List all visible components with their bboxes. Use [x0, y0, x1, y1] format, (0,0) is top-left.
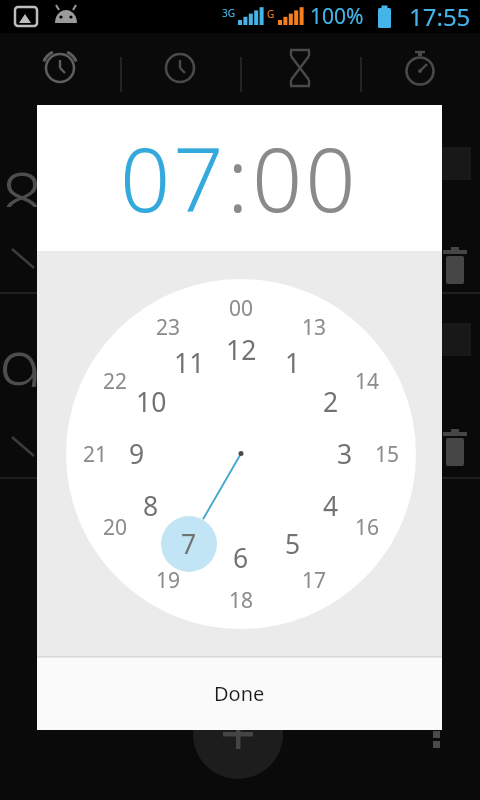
staticText: 3: [337, 436, 353, 472]
staticText: 12: [226, 332, 257, 368]
button[interactable]: Done: [37, 656, 442, 730]
staticText: 3G: [222, 6, 235, 20]
button[interactable]: [360, 33, 480, 103]
staticText: 8: [1, 147, 44, 207]
staticText: 23: [156, 313, 181, 342]
staticText: 13: [302, 313, 327, 342]
staticText: 00: [252, 118, 359, 238]
staticText: 14: [355, 367, 380, 396]
staticText: 16: [355, 513, 380, 542]
staticText: 8: [143, 488, 159, 524]
button[interactable]: [193, 689, 283, 779]
staticText: 17: [302, 566, 327, 595]
staticText: 5: [285, 526, 301, 562]
button[interactable]: [0, 33, 120, 103]
staticText: 20: [103, 513, 128, 542]
staticText: 11: [174, 345, 205, 381]
staticText: Done: [214, 680, 265, 707]
staticText: 1: [285, 345, 301, 381]
staticText: :: [227, 118, 252, 238]
staticText: 21: [83, 440, 108, 469]
staticText: 9: [129, 436, 145, 472]
staticText: 6: [233, 540, 249, 576]
staticText: 15: [375, 440, 400, 469]
staticText: 22: [103, 367, 128, 396]
staticText: 17:55: [409, 0, 471, 33]
staticText: 19: [156, 566, 181, 595]
staticText: 100%: [310, 2, 364, 31]
staticText: 4: [323, 488, 339, 524]
button[interactable]: [120, 33, 240, 103]
staticText: 9: [0, 327, 42, 387]
staticText: 7: [181, 526, 197, 562]
staticText: 10: [136, 384, 167, 420]
staticText: 18: [229, 586, 254, 615]
staticText: 07: [120, 118, 227, 238]
staticText: 00: [229, 294, 254, 323]
button[interactable]: [240, 33, 360, 103]
staticText: 2: [323, 384, 339, 420]
staticText: G: [267, 7, 275, 21]
